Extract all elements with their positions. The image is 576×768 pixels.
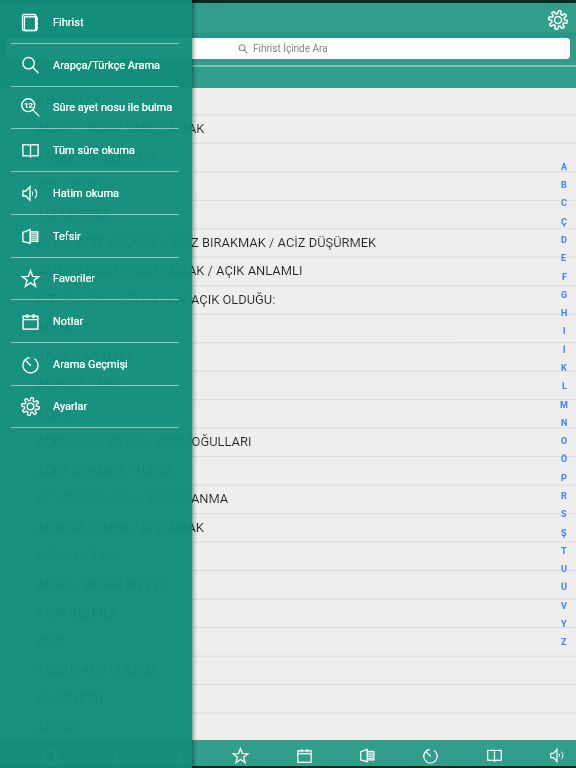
button[interactable]: Ş <box>555 524 573 543</box>
button[interactable]: C <box>555 194 573 213</box>
button[interactable]: Ç <box>555 213 573 232</box>
staticText: D <box>561 235 567 246</box>
button[interactable]: Settings <box>546 8 570 32</box>
button[interactable]: A <box>555 158 573 177</box>
button[interactable]: Audio <box>541 742 573 768</box>
button[interactable]: ACI ÇEKMEK <box>0 200 576 228</box>
button[interactable]: T <box>555 542 573 561</box>
button[interactable]: F <box>555 268 573 287</box>
button[interactable]: AĞLAMAK / GÜLMEK <box>0 656 576 684</box>
staticText: U <box>561 564 567 575</box>
button[interactable]: M <box>555 396 573 415</box>
button[interactable]: ACELE / ACELECİLİK <box>0 143 576 171</box>
button[interactable]: N <box>555 414 573 433</box>
button[interactable]: Read <box>478 742 510 768</box>
staticText: ACI ÇEKMEK <box>37 206 111 221</box>
button[interactable]: Hatim okuma <box>0 172 192 215</box>
button[interactable]: O <box>555 432 573 451</box>
button[interactable]: Ö <box>555 450 573 469</box>
button[interactable]: Arapça/Türkçe Arama <box>0 44 192 87</box>
button[interactable]: D <box>555 231 573 250</box>
staticText: H <box>561 308 568 319</box>
button[interactable]: S <box>555 505 573 524</box>
staticText: Z <box>561 637 567 648</box>
button[interactable]: Y <box>555 615 573 634</box>
button[interactable]: P <box>555 469 573 488</box>
button[interactable]: ADALET / ADİL <box>0 371 576 399</box>
button[interactable]: L <box>555 377 573 396</box>
staticText: Ş <box>561 528 567 539</box>
button[interactable]: Favoriler <box>0 257 192 300</box>
button[interactable]: Tefsir <box>351 742 383 768</box>
button[interactable]: U <box>555 560 573 579</box>
button[interactable]: B <box>555 176 573 195</box>
button[interactable]: Z <box>555 633 573 652</box>
staticText: KİTAPLARIN/KUR'AN'IN APAÇIK OLDUĞU: <box>37 292 276 307</box>
staticText: İ <box>563 345 566 356</box>
button[interactable]: 12 <box>0 86 192 129</box>
button[interactable]: AHİRET <box>0 713 576 741</box>
button[interactable]: İ <box>555 341 573 360</box>
button[interactable]: AĞIZ <box>0 628 576 656</box>
button[interactable]: ADAK / ADAMAK <box>0 343 576 371</box>
button[interactable]: AHAD (BİR) <box>0 685 576 713</box>
staticText: P <box>561 473 567 484</box>
button[interactable]: R <box>555 487 573 506</box>
staticText: Favoriler <box>53 272 95 285</box>
button[interactable]: ABDEST <box>0 86 576 114</box>
staticText: AÇIK / APAÇIK / AÇIKLAMAK / AÇIK ANLAMLI <box>37 263 303 278</box>
button[interactable]: Fihrist <box>0 1 192 44</box>
button[interactable]: E <box>555 249 573 268</box>
button[interactable]: ADET GÖRMEK / HAYIZ <box>0 457 576 485</box>
button[interactable]: Tefsir <box>0 215 192 258</box>
staticText: G <box>561 290 568 301</box>
staticText: AÇLIK <box>37 320 73 335</box>
button[interactable]: Fihrist İçinde Ara <box>6 38 570 59</box>
staticText: ADAŞ <box>37 406 70 421</box>
staticText: Tüm sûre okuma <box>53 144 135 157</box>
button[interactable]: Ayarlar <box>0 385 192 428</box>
button[interactable]: K <box>555 359 573 378</box>
button[interactable]: G <box>555 286 573 305</box>
button[interactable]: AFAROZ ETMEK / DIŞLAMAK <box>0 514 576 542</box>
button[interactable]: ACI / TUZLU <box>0 172 576 200</box>
staticText: Hatim okuma <box>53 187 120 200</box>
staticText: Fihrist <box>53 16 84 29</box>
staticText: Ö <box>561 454 568 465</box>
button[interactable]: AFSUN / İLAÇ <box>0 542 576 570</box>
button[interactable]: Ü <box>555 578 573 597</box>
staticText: ADALET / ADİL <box>37 377 124 392</box>
staticText: Fihrist İçinde Ara <box>253 43 328 55</box>
button[interactable]: AĞIR GELMEK <box>0 599 576 627</box>
button[interactable]: Arama Geçmişi <box>0 343 192 386</box>
button[interactable]: KİTAPLARIN/KUR'AN'IN APAÇIK OLDUĞU: <box>0 286 576 314</box>
staticText: T <box>561 546 567 557</box>
button[interactable]: ACAİP / ACAİP KARŞILAMAK <box>0 115 576 143</box>
button[interactable]: H <box>555 304 573 323</box>
button[interactable]: V <box>555 597 573 616</box>
button[interactable]: I <box>555 322 573 341</box>
button[interactable]: History <box>414 742 446 768</box>
button[interactable]: AF / BAĞIŞLAMA / BAĞIŞLANMA <box>0 485 576 513</box>
button[interactable]: ADEM (A.S) VE EŞİ / ADEMOĞULLARI <box>0 428 576 456</box>
staticText: ADAK / ADAMAK <box>37 349 135 364</box>
button[interactable]: ACİZ / ACİZ KALMAK / ACİZ BIRAKMAK / ACİ… <box>0 229 576 257</box>
button[interactable]: AĞAÇ / YASAK MEYVE <box>0 571 576 599</box>
button[interactable]: ADAŞ <box>0 400 576 428</box>
staticText: ACAİP / ACAİP KARŞILAMAK <box>37 121 205 136</box>
button[interactable]: Favorites <box>224 742 256 768</box>
staticText: F <box>562 272 567 283</box>
staticText: Y <box>561 619 567 630</box>
button[interactable]: Notes <box>288 742 320 768</box>
button[interactable]: Find verse by number <box>161 742 193 768</box>
staticText: AFAROZ ETMEK / DIŞLAMAK <box>37 520 204 535</box>
button[interactable]: AÇLIK <box>0 314 576 342</box>
button[interactable]: Notlar <box>0 300 192 343</box>
staticText: S <box>561 509 567 520</box>
button[interactable]: Tüm sûre okuma <box>0 129 192 172</box>
button[interactable]: AÇIK / APAÇIK / AÇIKLAMAK / AÇIK ANLAMLI <box>0 257 576 285</box>
